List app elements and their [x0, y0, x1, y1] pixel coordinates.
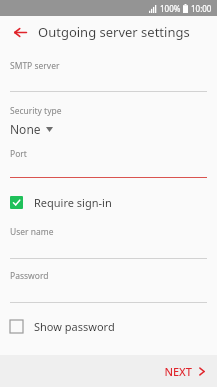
staticText: Show password: [34, 319, 115, 334]
staticText: Password: [10, 270, 49, 282]
button[interactable]: User name: [0, 215, 217, 259]
staticText: Security type: [10, 105, 62, 117]
button[interactable]: Port: [0, 137, 217, 178]
staticText: 100%: [160, 3, 181, 14]
button[interactable]: Security type: [0, 92, 217, 137]
button[interactable]: Navigate up: [10, 22, 30, 42]
staticText: Outgoing server settings: [38, 23, 190, 41]
staticText: Port: [10, 148, 27, 160]
staticText: User name: [10, 226, 54, 238]
staticText: NEXT: [164, 364, 192, 379]
button[interactable]: Show password: [0, 313, 217, 339]
staticText: None: [10, 121, 41, 137]
staticText: 10:00: [191, 3, 212, 14]
button[interactable]: Require sign-in: [0, 189, 217, 215]
button[interactable]: NEXT: [152, 358, 217, 385]
button[interactable]: SMTP server: [0, 48, 217, 92]
button[interactable]: Password: [0, 259, 217, 303]
staticText: SMTP server: [10, 60, 60, 72]
staticText: Require sign-in: [34, 195, 112, 210]
